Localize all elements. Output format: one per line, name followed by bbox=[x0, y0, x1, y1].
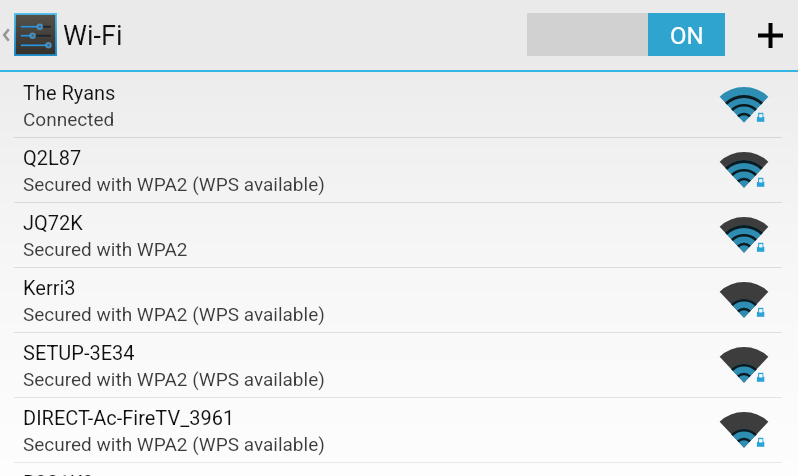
button[interactable]: R2S1K8 bbox=[0, 463, 798, 476]
staticText: The Ryans bbox=[23, 81, 116, 104]
button[interactable]: Kerri3 bbox=[0, 268, 798, 333]
button[interactable]: SETUP-3E34 bbox=[0, 333, 798, 398]
staticText: R2S1K8 bbox=[23, 471, 94, 476]
button[interactable]: DIRECT-Ac-FireTV_3961 bbox=[0, 398, 798, 463]
staticText: DIRECT-Ac-FireTV_3961 bbox=[23, 406, 235, 429]
button[interactable]: ON bbox=[527, 13, 725, 56]
staticText: Connected bbox=[23, 108, 115, 130]
staticText: Secured with WPA2 (WPS available) bbox=[23, 173, 325, 195]
staticText: Secured with WPA2 bbox=[23, 238, 188, 260]
staticText: Secured with WPA2 (WPS available) bbox=[23, 368, 325, 390]
staticText: Wi-Fi bbox=[63, 20, 123, 52]
staticText: ON bbox=[670, 22, 704, 50]
button[interactable]: The Ryans bbox=[0, 73, 798, 138]
button[interactable]: JQ72K bbox=[0, 203, 798, 268]
button[interactable]: Back bbox=[0, 13, 13, 57]
staticText: Q2L87 bbox=[23, 146, 82, 169]
staticText: JQ72K bbox=[23, 211, 83, 234]
staticText: SETUP-3E34 bbox=[23, 341, 135, 364]
button[interactable]: Add network bbox=[748, 13, 792, 57]
staticText: Secured with WPA2 (WPS available) bbox=[23, 303, 325, 325]
button[interactable]: Q2L87 bbox=[0, 138, 798, 203]
staticText: Secured with WPA2 (WPS available) bbox=[23, 433, 325, 455]
staticText: Kerri3 bbox=[23, 276, 76, 299]
button[interactable]: Settings bbox=[14, 13, 57, 56]
